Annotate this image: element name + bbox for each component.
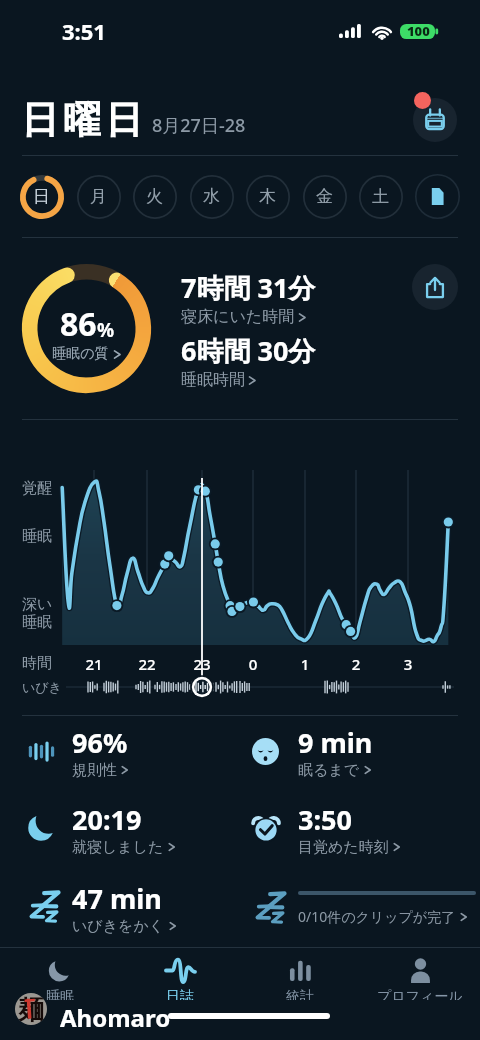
button[interactable]: 睡眠 — [0, 955, 120, 1000]
button[interactable]: 火 — [132, 174, 177, 219]
staticText: 47 min — [72, 880, 162, 917]
staticText: いびきをかく — [72, 917, 165, 934]
staticText: 就寝しました — [72, 838, 164, 855]
staticText: 睡眠時間 — [181, 370, 245, 390]
button[interactable]: Share — [412, 264, 458, 310]
staticText: 規則性 — [72, 761, 117, 778]
staticText: 2 — [341, 654, 371, 674]
staticText: 水 — [203, 186, 220, 207]
staticText: 1 — [290, 654, 320, 674]
button[interactable]: 統計 — [240, 955, 360, 1000]
button[interactable]: 寝床にいた時間 — [181, 307, 307, 327]
button[interactable]: 木 — [245, 174, 290, 219]
staticText: 3:50 — [298, 801, 352, 838]
staticText: Ahomaro — [60, 1001, 171, 1034]
staticText: 麺 — [18, 994, 44, 1025]
staticText: 時間 — [22, 654, 52, 673]
button[interactable]: 日 — [19, 174, 64, 219]
button[interactable]: 土 — [358, 174, 403, 219]
staticText: 7時間 31分 — [181, 269, 316, 306]
staticText: 火 — [146, 186, 163, 207]
staticText: 6時間 30分 — [181, 332, 316, 369]
staticText: 睡眠の質 — [52, 345, 109, 363]
staticText: 目覚めた時刻 — [298, 838, 389, 855]
staticText: 20:19 — [72, 801, 142, 838]
staticText: 月 — [90, 186, 107, 207]
staticText: 金 — [316, 186, 333, 207]
staticText: 3:51 — [62, 16, 106, 46]
button[interactable]: 20:19 — [26, 801, 236, 855]
button[interactable]: 3:50 — [252, 801, 462, 855]
button[interactable]: 9 min — [252, 724, 462, 778]
button[interactable]: 日誌 — [120, 955, 240, 1000]
staticText: 0 — [238, 654, 268, 674]
staticText: 96% — [72, 724, 128, 761]
button[interactable]: 0/10件のクリップが完了 — [252, 884, 480, 932]
staticText: 23 — [187, 654, 217, 674]
staticText: プロフィール — [377, 988, 463, 1000]
staticText: 覚醒 — [22, 479, 52, 498]
staticText: いびき — [22, 679, 62, 695]
staticText: 3 — [393, 654, 423, 674]
staticText: 8月27日-28 — [152, 113, 246, 138]
staticText: 木 — [259, 186, 276, 207]
staticText: 眠るまで — [298, 761, 360, 778]
staticText: 9 min — [298, 724, 373, 761]
button[interactable]: 睡眠時間 — [181, 370, 257, 390]
staticText: 日誌 — [166, 988, 194, 1000]
staticText: 睡眠 — [22, 527, 52, 546]
staticText: 寝床にいた時間 — [181, 307, 295, 327]
button[interactable]: Calendar — [410, 95, 460, 145]
staticText: 日曜日 — [19, 96, 145, 144]
staticText: 0/10件のクリップが完了 — [298, 907, 456, 926]
staticText: 日 — [33, 186, 50, 207]
staticText: % — [97, 317, 115, 343]
staticText: 統計 — [286, 988, 314, 1000]
button[interactable]: プロフィール — [360, 955, 480, 1000]
button[interactable]: Notes — [415, 174, 460, 219]
staticText: 21 — [79, 654, 109, 674]
staticText: 深い 睡眠 — [22, 595, 53, 632]
button[interactable]: 86 — [52, 302, 122, 364]
button[interactable]: 47 min — [26, 880, 236, 934]
button[interactable]: 96% — [26, 724, 236, 778]
staticText: 100 — [407, 22, 430, 40]
staticText: 睡眠 — [46, 988, 74, 1000]
staticText: 86 — [60, 302, 97, 346]
button[interactable]: 水 — [189, 174, 234, 219]
staticText: 土 — [372, 186, 389, 207]
staticText: 22 — [132, 654, 162, 674]
button[interactable]: 金 — [302, 174, 347, 219]
button[interactable]: 月 — [76, 174, 121, 219]
